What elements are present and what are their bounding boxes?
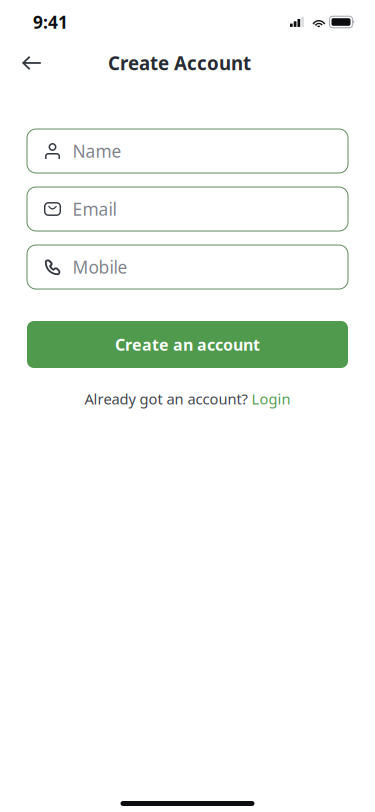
button[interactable]: Email <box>27 187 348 231</box>
staticText: 9:41 <box>33 10 68 33</box>
staticText: Create Account <box>108 51 251 75</box>
staticText: Create an account <box>115 334 260 355</box>
staticText: Name <box>72 139 121 162</box>
button[interactable]: Back <box>0 46 51 80</box>
staticText: Email <box>72 197 116 220</box>
button[interactable]: Mobile <box>27 245 348 289</box>
staticText: Login <box>251 389 290 408</box>
staticText: Already got an account? <box>84 389 247 408</box>
button[interactable]: Login <box>251 389 290 408</box>
staticText: Mobile <box>72 255 127 278</box>
button[interactable]: Name <box>27 129 348 173</box>
button[interactable]: Create an account <box>27 321 348 368</box>
